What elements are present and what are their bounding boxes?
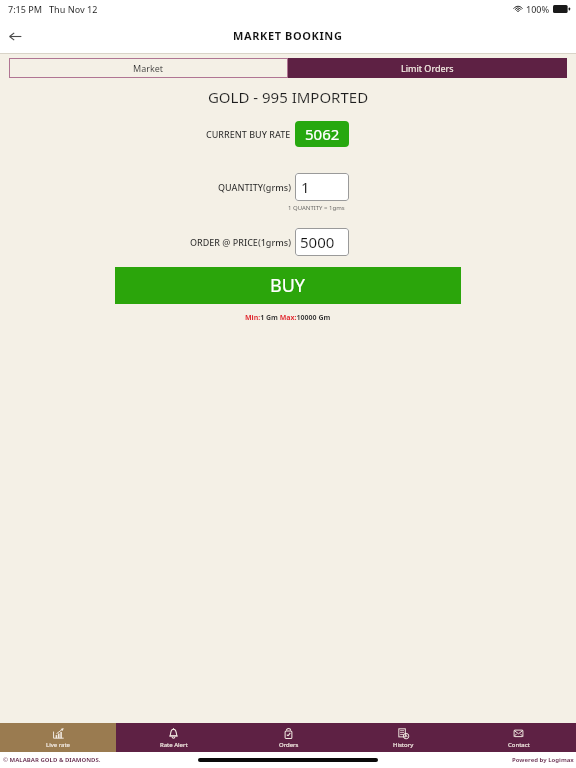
button[interactable]: Limit Orders [288, 58, 567, 78]
staticText: © MALABAR GOLD & DIAMONDS. [3, 756, 101, 764]
staticText: History [393, 741, 414, 749]
staticText: Orders [279, 741, 299, 749]
staticText: GOLD - 995 IMPORTED [0, 87, 576, 107]
button[interactable]: Back [3, 24, 27, 48]
button[interactable]: 5000 [295, 228, 349, 256]
button[interactable]: BUY [115, 267, 461, 304]
staticText: Powered by Logimax [512, 756, 574, 764]
staticText: QUANTITY(grms) [218, 181, 291, 193]
staticText: Thu Nov 12 [49, 3, 98, 15]
button[interactable]: Orders [231, 723, 346, 752]
staticText: 1 [301, 177, 310, 197]
staticText: 5062 [305, 124, 340, 144]
staticText: ORDER @ PRICE(1grms) [190, 236, 291, 248]
staticText: 100% [526, 3, 550, 15]
staticText: 5000 [300, 232, 335, 252]
button[interactable]: 1 [295, 173, 349, 201]
button[interactable]: Contact [461, 723, 576, 752]
staticText: BUY [270, 273, 306, 298]
staticText: CURRENT BUY RATE [206, 128, 291, 140]
staticText: Rate Alert [160, 741, 188, 749]
staticText: Min:1 Gm Max:10000 Gm [245, 313, 331, 323]
staticText: Market [133, 62, 164, 74]
button[interactable]: History [346, 723, 461, 752]
staticText: Live rate [46, 741, 70, 749]
staticText: Contact [508, 741, 530, 749]
staticText: 7:15 PM [8, 3, 42, 15]
button[interactable]: Market [9, 58, 288, 78]
staticText: MARKET BOOKING [233, 28, 343, 43]
staticText: Limit Orders [401, 62, 454, 74]
button[interactable]: Rate Alert [116, 723, 231, 752]
staticText: 1 QUANTITY = 1gms [288, 204, 345, 212]
button[interactable]: Live rate [0, 723, 116, 752]
